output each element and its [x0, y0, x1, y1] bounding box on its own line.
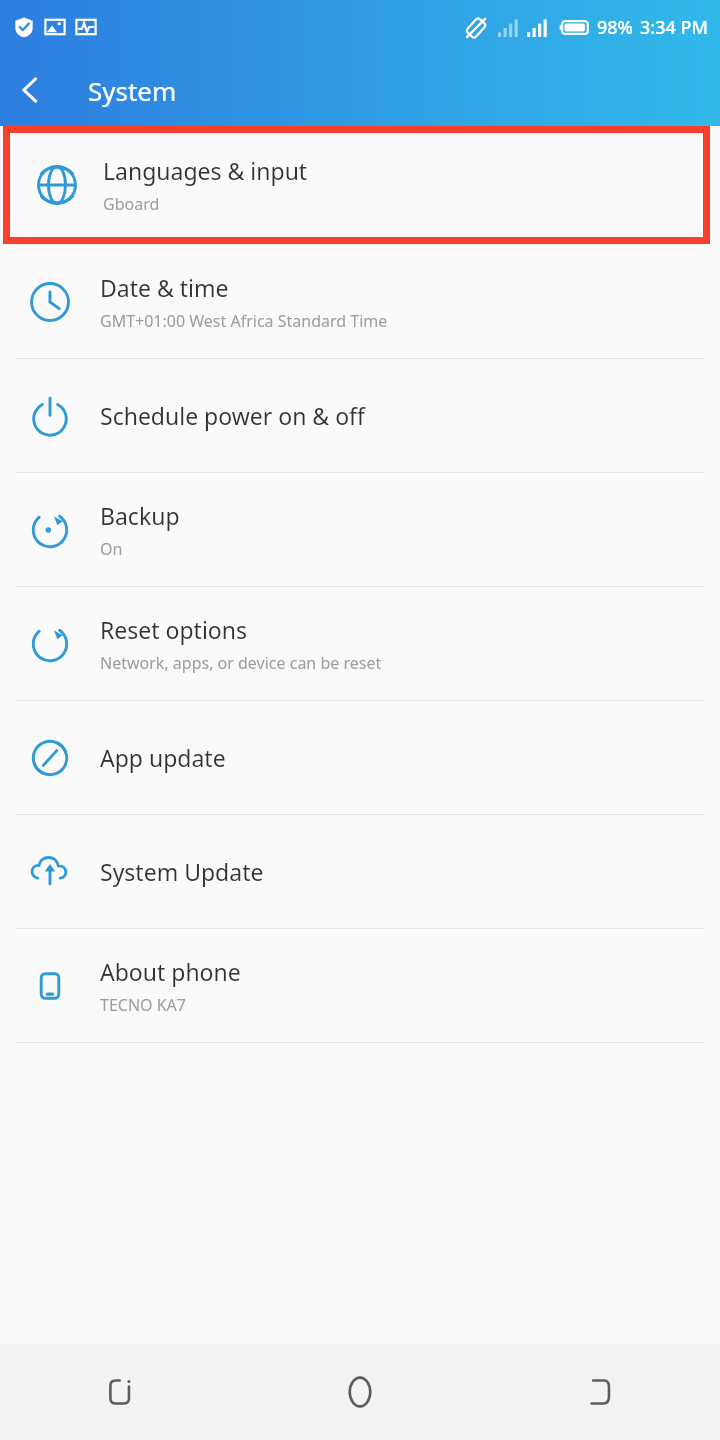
button[interactable]: Reset options: [0, 587, 720, 700]
staticText: About phone: [100, 956, 241, 987]
staticText: TECNO KA7: [100, 994, 187, 1016]
button[interactable]: Languages & input: [10, 133, 703, 237]
staticText: Reset options: [100, 614, 247, 645]
button[interactable]: About phone: [0, 929, 720, 1042]
staticText: GMT+01:00 West Africa Standard Time: [100, 310, 388, 332]
staticText: Date & time: [100, 272, 229, 303]
staticText: 98%: [597, 15, 633, 40]
staticText: Schedule power on & off: [100, 400, 365, 431]
staticText: System Update: [100, 856, 264, 887]
button[interactable]: Home: [240, 1344, 480, 1440]
staticText: App update: [100, 742, 226, 773]
staticText: Gboard: [103, 193, 160, 215]
staticText: On: [100, 538, 123, 560]
staticText: System: [88, 73, 177, 108]
button[interactable]: Backup: [0, 473, 720, 586]
button[interactable]: App update: [0, 701, 720, 814]
button[interactable]: Schedule power on & off: [0, 359, 720, 472]
button[interactable]: Back: [0, 60, 60, 120]
staticText: 3:34 PM: [640, 15, 708, 40]
staticText: Languages & input: [103, 155, 308, 186]
button[interactable]: System Update: [0, 815, 720, 928]
staticText: Backup: [100, 500, 180, 531]
button[interactable]: Recent apps: [0, 1344, 240, 1440]
button[interactable]: Date & time: [0, 245, 720, 358]
staticText: Network, apps, or device can be reset: [100, 652, 382, 674]
button[interactable]: Back: [480, 1344, 720, 1440]
